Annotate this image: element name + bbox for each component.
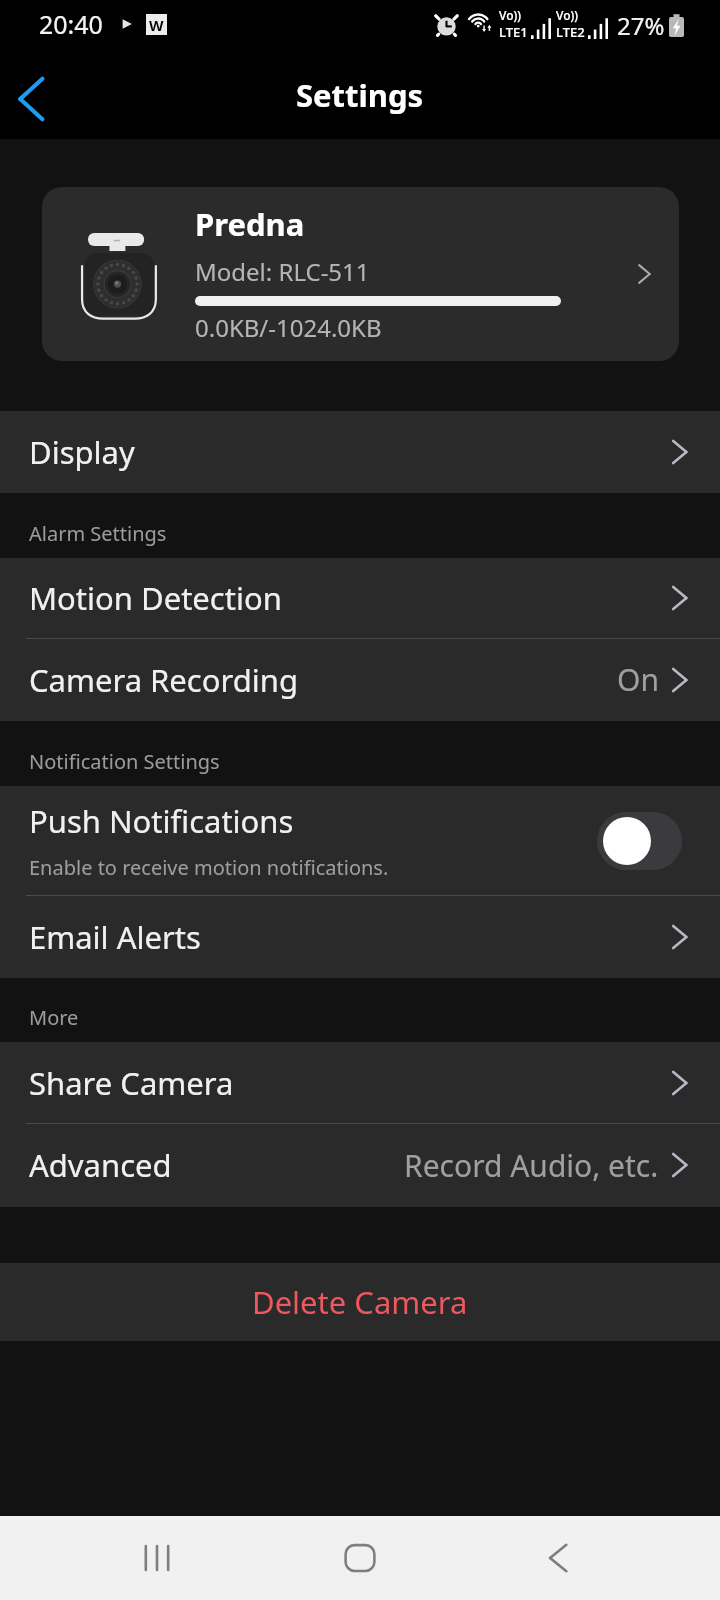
- button[interactable]: Display: [0, 411, 720, 493]
- button[interactable]: Back: [0, 58, 62, 139]
- staticText: LTE1: [499, 23, 528, 41]
- button[interactable]: Camera Recording: [0, 638, 720, 721]
- staticText: Share Camera: [29, 1062, 234, 1104]
- staticText: Advanced: [29, 1144, 172, 1186]
- button[interactable]: Delete Camera: [0, 1263, 720, 1341]
- staticText: 0.0KB/-1024.0KB: [195, 311, 382, 344]
- staticText: More: [29, 1004, 79, 1031]
- staticText: Record Audio, etc.: [404, 1145, 659, 1186]
- staticText: Email Alerts: [29, 916, 201, 958]
- staticText: Settings: [296, 74, 424, 116]
- staticText: W: [149, 15, 164, 35]
- staticText: Vo)): [556, 7, 578, 23]
- staticText: Display: [29, 431, 135, 473]
- staticText: 27%: [617, 9, 665, 42]
- button[interactable]: Advanced: [0, 1123, 720, 1207]
- staticText: 20:40: [39, 7, 103, 41]
- staticText: Delete Camera: [252, 1281, 468, 1323]
- button[interactable]: Push Notifications: [0, 786, 720, 895]
- staticText: Push Notifications: [29, 800, 294, 842]
- staticText: Vo)): [499, 7, 521, 23]
- staticText: Predna: [195, 203, 305, 245]
- button[interactable]: Email Alerts: [0, 895, 720, 978]
- staticText: On: [617, 659, 659, 700]
- button[interactable]: Recent apps: [109, 1516, 205, 1600]
- staticText: Alarm Settings: [29, 520, 167, 547]
- button[interactable]: Push Notifications toggle: [597, 812, 682, 870]
- button[interactable]: Share Camera: [0, 1042, 720, 1123]
- staticText: Enable to receive motion notifications.: [29, 854, 389, 881]
- staticText: Motion Detection: [29, 577, 282, 619]
- button[interactable]: Predna: [42, 187, 679, 361]
- button[interactable]: Motion Detection: [0, 558, 720, 638]
- staticText: Notification Settings: [29, 748, 220, 775]
- staticText: Model: RLC-511: [195, 255, 370, 288]
- staticText: LTE2: [556, 23, 585, 41]
- staticText: Camera Recording: [29, 659, 298, 701]
- button[interactable]: Home: [312, 1516, 408, 1600]
- button[interactable]: Back: [510, 1516, 606, 1600]
